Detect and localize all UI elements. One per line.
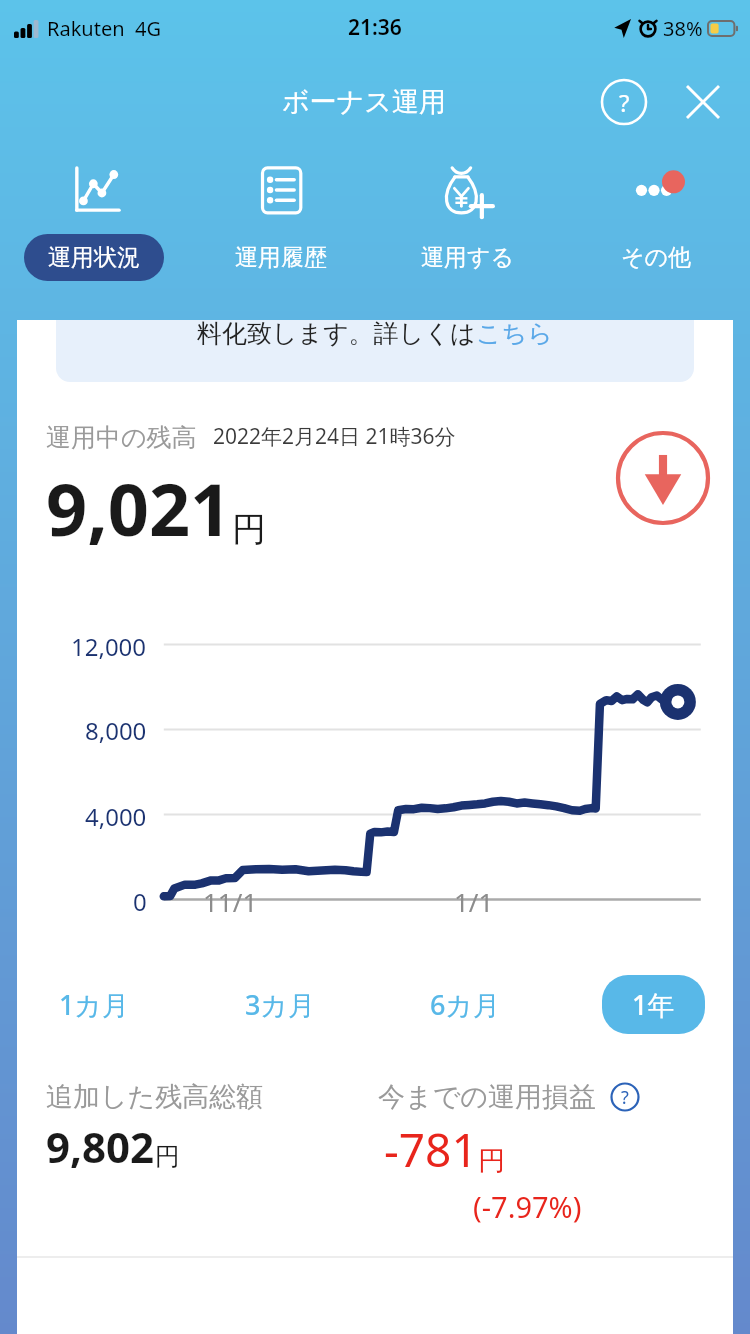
- staticText: 12,000: [71, 630, 147, 663]
- staticText: 運用状況: [48, 243, 140, 272]
- button[interactable]: 運用する: [374, 148, 562, 281]
- staticText: 運用する: [421, 243, 515, 272]
- button[interactable]: 運用履歴: [187, 148, 374, 281]
- staticText: 38%: [663, 15, 703, 42]
- staticText: Rakuten: [47, 15, 125, 42]
- staticText: 4,000: [85, 800, 147, 833]
- button[interactable]: Profit and loss help: [608, 1080, 642, 1114]
- staticText: 今までの運用損益: [378, 1080, 596, 1114]
- staticText: 運用履歴: [235, 243, 327, 272]
- staticText: ボーナス運用: [282, 85, 446, 119]
- staticText: こちら: [476, 320, 553, 349]
- staticText: ?: [621, 1085, 629, 1110]
- staticText: 円: [155, 1141, 180, 1172]
- staticText: 9,802: [46, 1118, 155, 1175]
- button[interactable]: 1年: [602, 975, 705, 1034]
- staticText: 4G: [135, 15, 161, 42]
- staticText: その他: [621, 243, 692, 272]
- button[interactable]: Help: [598, 76, 650, 128]
- staticText: 円: [478, 1144, 505, 1178]
- staticText: -781: [384, 1118, 478, 1181]
- staticText: 3カ月: [245, 986, 316, 1023]
- button[interactable]: 3カ月: [231, 975, 330, 1034]
- staticText: 追加した残高総額: [46, 1080, 264, 1114]
- button[interactable]: Decrease: [615, 430, 711, 526]
- button[interactable]: Close: [676, 75, 730, 129]
- button[interactable]: その他: [562, 148, 750, 281]
- staticText: 8,000: [85, 714, 147, 747]
- staticText: 1/1: [454, 884, 494, 919]
- staticText: 11/1: [203, 884, 258, 919]
- staticText: 1カ月: [59, 986, 130, 1023]
- button[interactable]: 1カ月: [45, 975, 144, 1034]
- staticText: 9,021: [46, 459, 232, 557]
- button[interactable]: 料化致します。詳しくは: [56, 320, 694, 382]
- staticText: (-7.97%): [473, 1187, 582, 1226]
- staticText: 1年: [632, 986, 675, 1023]
- button[interactable]: 運用状況: [0, 148, 187, 281]
- button[interactable]: 6カ月: [416, 975, 515, 1034]
- staticText: 21:36: [348, 13, 402, 42]
- staticText: 6カ月: [430, 986, 501, 1023]
- staticText: 運用中の残高: [46, 422, 197, 453]
- staticText: ?: [619, 86, 630, 119]
- staticText: 0: [133, 885, 147, 918]
- staticText: 円: [232, 508, 266, 551]
- staticText: 料化致します。詳しくは: [197, 320, 476, 349]
- staticText: 2022年2月24日 21時36分: [213, 422, 456, 451]
